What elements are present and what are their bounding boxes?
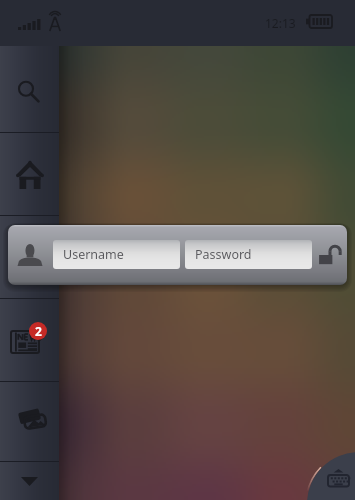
staticText: 12:13 <box>265 15 296 31</box>
staticText: 2 <box>35 323 42 339</box>
button[interactable]: Keyboard <box>322 464 355 500</box>
staticText: Username <box>63 246 124 263</box>
button[interactable]: News <box>0 299 59 381</box>
button[interactable]: Unlock <box>314 238 347 272</box>
button[interactable]: Username <box>53 240 180 269</box>
button[interactable]: Gallery <box>0 382 59 461</box>
button[interactable]: Home <box>0 133 59 215</box>
staticText: Password <box>195 246 252 263</box>
button[interactable]: Search <box>0 46 59 132</box>
button[interactable]: More <box>0 462 59 500</box>
button[interactable]: Password <box>185 240 312 269</box>
button[interactable]: Contacts <box>0 216 59 298</box>
